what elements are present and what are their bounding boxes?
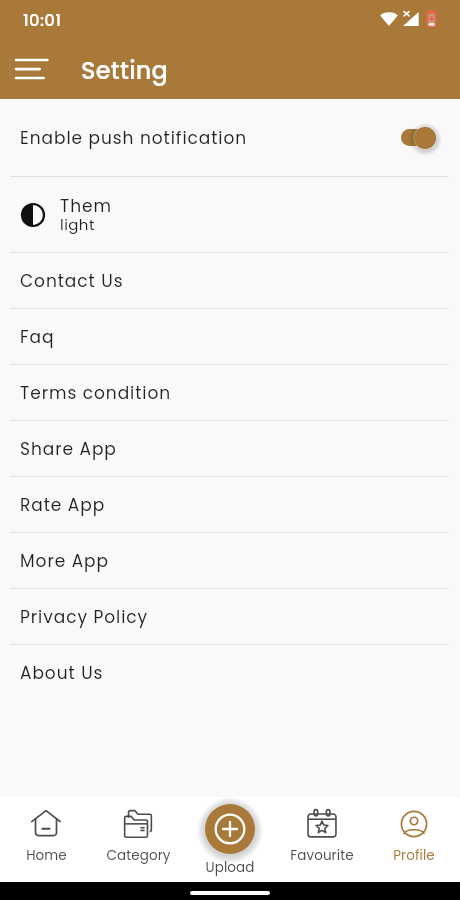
staticText: Upload xyxy=(205,858,255,877)
button[interactable]: Profile xyxy=(368,797,460,882)
staticText: 10:01 xyxy=(23,9,62,32)
button[interactable]: Them xyxy=(0,177,460,252)
staticText: More App xyxy=(20,549,109,573)
button[interactable]: More App xyxy=(0,533,460,588)
staticText: Favourite xyxy=(290,846,354,865)
staticText: Rate App xyxy=(20,493,106,517)
button[interactable]: Home xyxy=(0,797,92,882)
staticText: Faq xyxy=(20,325,55,349)
button[interactable]: Contact Us xyxy=(0,253,460,308)
button[interactable]: Open navigation menu xyxy=(16,53,50,83)
staticText: Category xyxy=(106,846,171,865)
staticText: Setting xyxy=(81,54,169,88)
button[interactable]: About Us xyxy=(0,645,460,700)
staticText: Contact Us xyxy=(20,269,124,293)
staticText: Profile xyxy=(393,846,435,865)
staticText: About Us xyxy=(20,661,104,685)
staticText: Privacy Policy xyxy=(20,605,149,629)
button[interactable]: Category xyxy=(92,797,184,882)
button[interactable]: Upload xyxy=(184,797,276,882)
staticText: Them xyxy=(60,194,112,218)
staticText: Enable push notification xyxy=(20,126,248,150)
staticText: Terms condition xyxy=(20,381,172,405)
button[interactable]: Share App xyxy=(0,421,460,476)
button[interactable]: Enable push notification xyxy=(0,99,460,176)
button[interactable]: Privacy Policy xyxy=(0,589,460,644)
staticText: light xyxy=(60,214,95,235)
button[interactable]: Favourite xyxy=(276,797,368,882)
button[interactable]: Faq xyxy=(0,309,460,364)
staticText: Share App xyxy=(20,437,117,461)
button[interactable]: Rate App xyxy=(0,477,460,532)
staticText: Home xyxy=(26,846,67,865)
button[interactable]: Terms condition xyxy=(0,365,460,420)
